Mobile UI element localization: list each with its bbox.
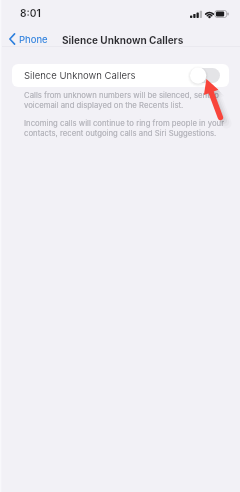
staticText: Phone [19,34,48,45]
button[interactable]: Silence Unknown Callers toggle, off [188,64,222,87]
staticText: 8:01 [20,7,41,19]
staticText: Silence Unknown Callers [62,34,184,46]
staticText: Silence Unknown Callers [24,70,136,81]
button[interactable]: Phone [5,31,52,47]
button[interactable]: Silence Unknown Callers [12,64,229,87]
staticText: Calls from unknown numbers will be silen… [24,90,227,110]
staticText: Incoming calls will continue to ring fro… [24,118,227,138]
